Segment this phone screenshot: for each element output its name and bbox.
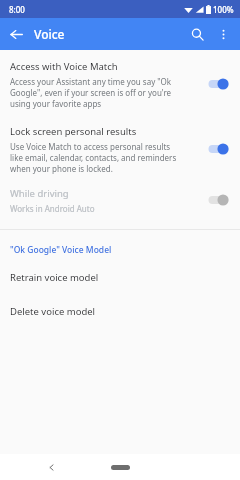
button[interactable]: Home [100,459,140,475]
staticText: Access your Assistant any time you say "… [10,76,172,109]
staticText: Voice [34,26,65,42]
button[interactable]: Retrain voice model [0,270,240,284]
staticText: "Ok Google" Voice Model [10,244,112,256]
button[interactable]: Access with Voice Match [0,50,240,118]
staticText: Lock screen personal results [10,125,137,138]
button[interactable]: Toggle [204,191,232,209]
button[interactable]: While driving [0,180,240,220]
staticText: Retrain voice model [10,271,99,284]
button[interactable]: Search [184,21,210,47]
button[interactable]: Toggle [204,75,232,93]
staticText: Delete voice model [10,305,96,318]
button[interactable]: More options [210,21,236,47]
staticText: While driving [10,187,69,200]
button[interactable]: Delete voice model [0,304,240,318]
button[interactable]: Back [40,456,62,478]
button[interactable]: Back [4,22,28,46]
staticText: Access with Voice Match [10,60,118,73]
staticText: 100% [213,4,234,15]
staticText: Works in Android Auto [10,203,95,214]
staticText: Use Voice Match to access personal resul… [10,141,177,174]
button[interactable]: Lock screen personal results [0,118,240,180]
staticText: 8:00 [9,4,25,15]
button[interactable]: Toggle [204,140,232,158]
